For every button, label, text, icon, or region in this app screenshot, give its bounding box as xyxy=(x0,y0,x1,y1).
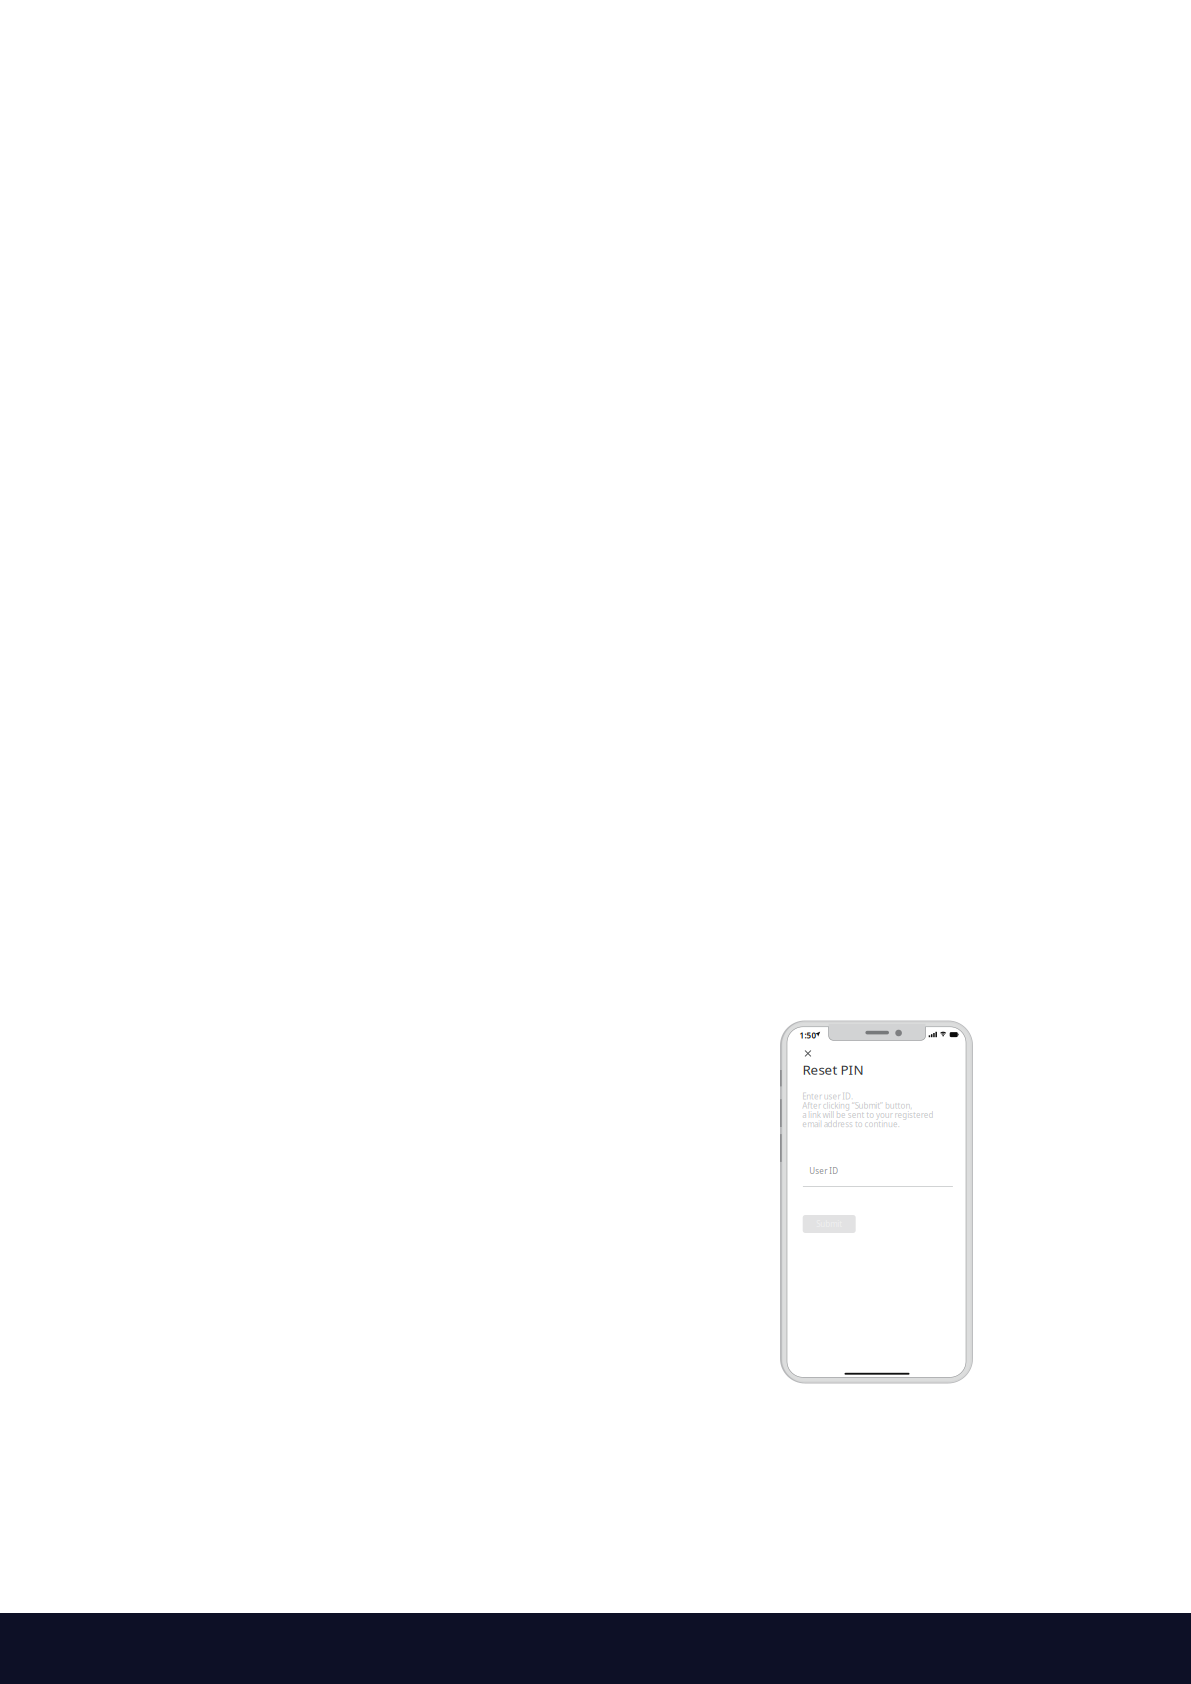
button[interactable]: Submit xyxy=(803,1215,856,1233)
staticText: Reset PIN xyxy=(803,1061,864,1078)
staticText: email address to continue. xyxy=(802,1119,900,1129)
staticText: After clicking “Submit” button, xyxy=(802,1100,912,1111)
button[interactable]: User ID xyxy=(803,1160,953,1187)
button[interactable]: Close xyxy=(801,1047,814,1060)
staticText: User ID xyxy=(809,1165,838,1176)
staticText: Enter user ID. xyxy=(802,1091,853,1102)
staticText: 1:50 xyxy=(799,1030,816,1041)
staticText: a link will be sent to your registered xyxy=(802,1110,934,1120)
staticText: Submit xyxy=(816,1219,842,1229)
